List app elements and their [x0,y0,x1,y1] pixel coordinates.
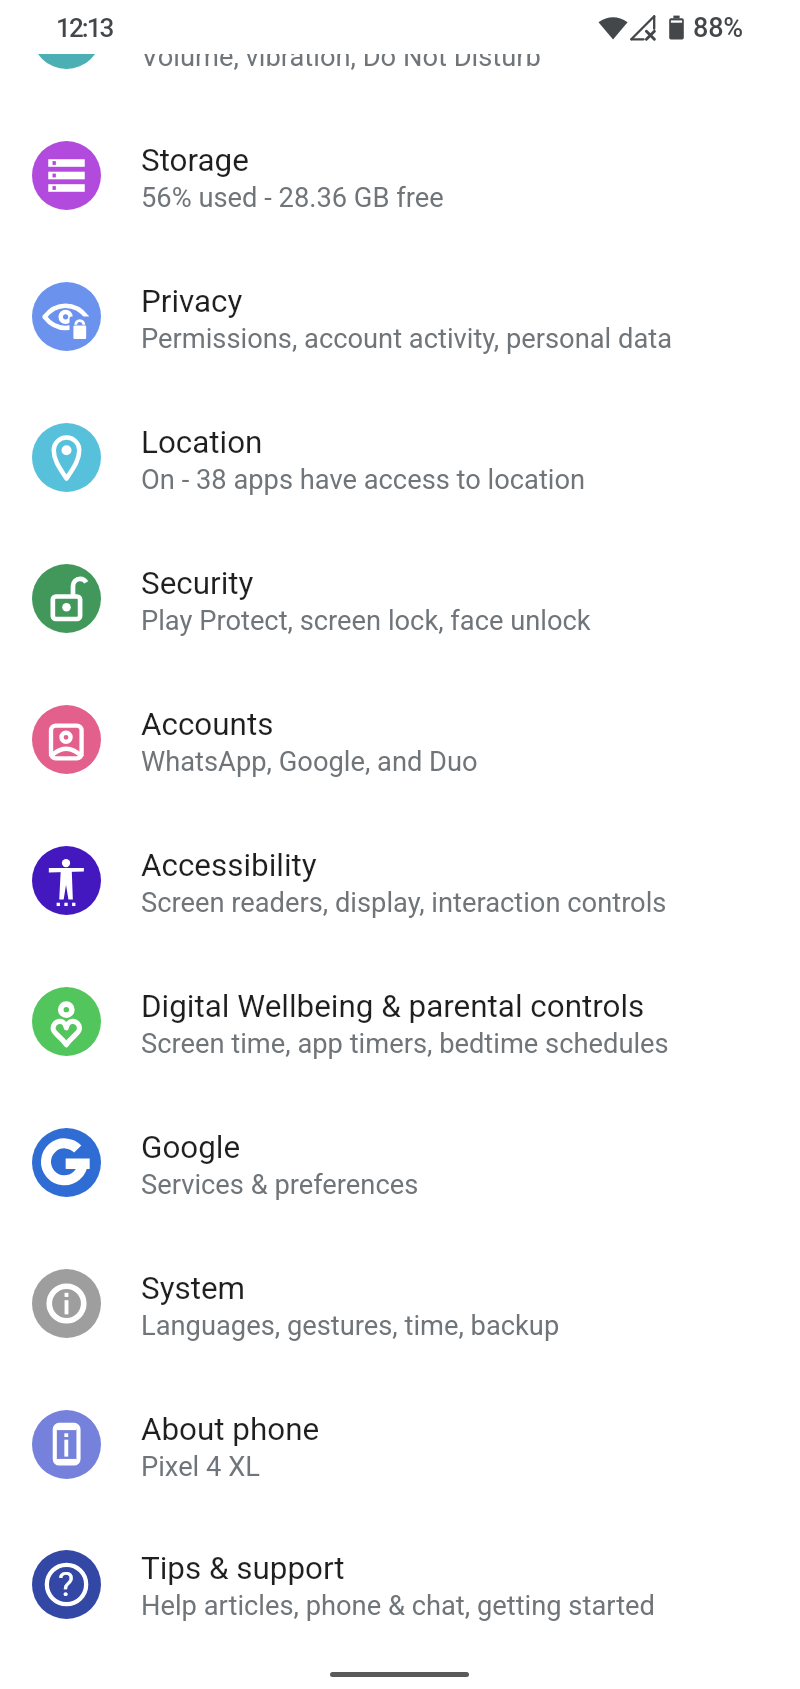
staticText: Screen time, app timers, bedtime schedul… [141,1028,669,1060]
staticText: Permissions, account activity, personal … [141,323,673,355]
staticText: Privacy [141,283,243,320]
button[interactable]: Location [0,387,800,528]
staticText: System [141,1270,246,1307]
button[interactable]: Google [0,1092,800,1233]
staticText: Accessibility [141,847,317,884]
button[interactable]: Sound [0,0,800,105]
staticText: About phone [141,1411,320,1448]
staticText: Tips & support [141,1550,345,1587]
button[interactable]: Storage [0,105,800,246]
staticText: Accounts [141,706,274,743]
staticText: Location [141,424,263,461]
other: Home gesture bar [330,1672,469,1677]
staticText: Security [141,565,254,602]
button[interactable]: About phone [0,1374,800,1515]
staticText: 56% used - 28.36 GB free [141,182,444,214]
button[interactable]: Accounts [0,669,800,810]
button[interactable]: ? [0,1515,800,1653]
button[interactable]: Privacy [0,246,800,387]
staticText: Languages, gestures, time, backup [141,1310,560,1342]
staticText: Pixel 4 XL [141,1451,260,1483]
staticText: Storage [141,142,249,179]
button[interactable]: Digital Wellbeing & parental controls [0,951,800,1092]
staticText: Digital Wellbeing & parental controls [141,988,645,1025]
staticText: Screen readers, display, interaction con… [141,887,667,919]
staticText: On - 38 apps have access to location [141,464,586,496]
button[interactable]: Security [0,528,800,669]
staticText: Play Protect, screen lock, face unlock [141,605,591,637]
staticText: Volume, vibration, Do Not Disturb [141,41,541,73]
staticText: Services & preferences [141,1169,419,1201]
button[interactable]: System [0,1233,800,1374]
button[interactable]: Accessibility [0,810,800,951]
staticText: WhatsApp, Google, and Duo [141,746,478,778]
staticText: 88% [693,12,743,44]
staticText: Google [141,1129,241,1166]
staticText: 12:13 [56,13,113,43]
staticText: Help articles, phone & chat, getting sta… [141,1590,655,1622]
staticText: ? [58,1564,75,1604]
